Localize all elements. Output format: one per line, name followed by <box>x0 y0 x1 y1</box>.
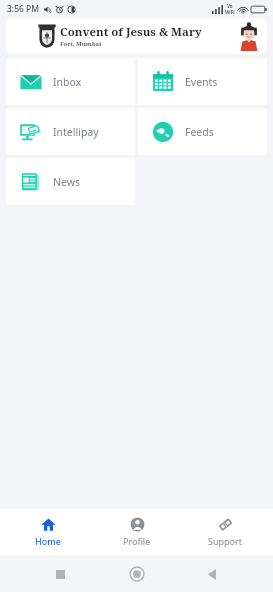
staticText: Fort, Mumbai <box>60 40 102 48</box>
button[interactable]: Convent of Jesus & Mary <box>6 18 267 54</box>
button[interactable]: News <box>6 158 135 205</box>
staticText: Vo <box>227 3 233 9</box>
button[interactable]: Support <box>185 509 265 555</box>
staticText: Feeds <box>185 125 214 139</box>
staticText: Support <box>208 535 242 547</box>
button[interactable]: Back <box>196 557 230 591</box>
staticText: Profile <box>123 535 151 547</box>
staticText: Home <box>35 535 61 547</box>
button[interactable]: Home <box>120 557 154 591</box>
staticText: Events <box>185 75 218 89</box>
button[interactable]: Feeds <box>138 108 267 155</box>
button[interactable]: Events <box>138 58 267 105</box>
button[interactable]: Home <box>8 509 88 555</box>
staticText: Convent of Jesus & Mary <box>60 24 202 40</box>
button[interactable]: Inbox <box>6 58 135 105</box>
button[interactable]: Intellipay <box>6 108 135 155</box>
staticText: News <box>53 175 80 189</box>
staticText: 3:56 PM <box>7 3 40 15</box>
staticText: WiFi <box>225 9 235 15</box>
staticText: Intellipay <box>53 125 99 139</box>
button[interactable]: Recent apps <box>43 557 77 591</box>
staticText: Inbox <box>53 75 82 89</box>
button[interactable]: Profile <box>97 509 177 555</box>
button[interactable]: Profile avatar <box>234 21 264 51</box>
